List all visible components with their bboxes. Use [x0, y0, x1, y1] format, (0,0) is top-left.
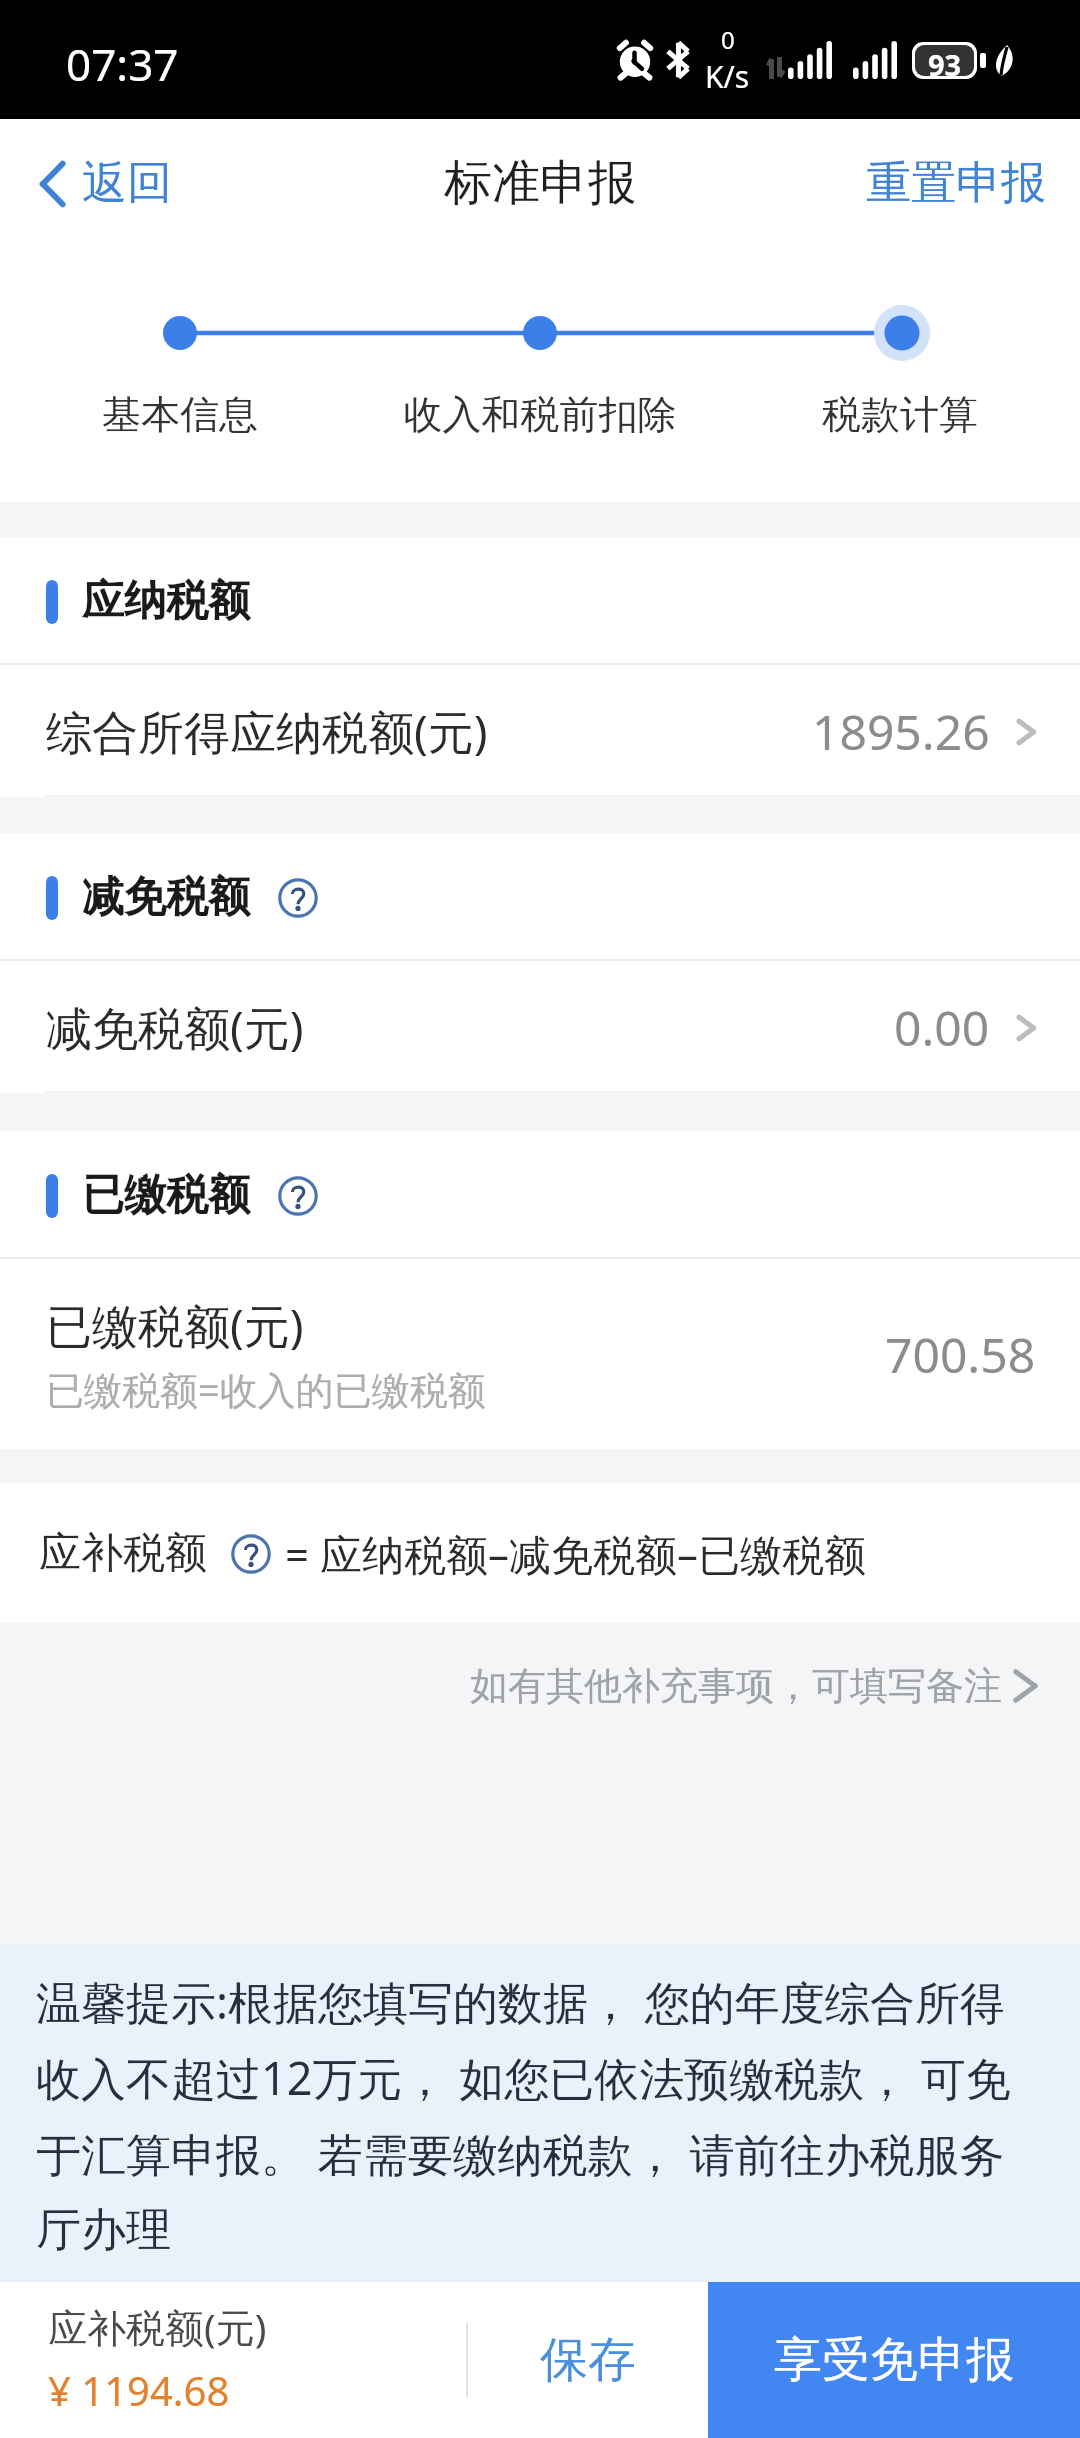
- staticText: 应纳税额: [82, 575, 250, 628]
- button[interactable]: 减免税额(元): [0, 961, 1080, 1093]
- button[interactable]: 已缴税额(元): [0, 1259, 1080, 1449]
- staticText: 保存: [540, 2330, 636, 2390]
- staticText: 07:37: [66, 34, 179, 94]
- staticText: = 应纳税额–减免税额–已缴税额: [285, 1525, 866, 1582]
- staticText: 1895.26: [812, 699, 990, 764]
- button[interactable]: 享受免申报: [708, 2282, 1080, 2438]
- staticText: 已缴税额: [82, 1169, 250, 1222]
- staticText: 减免税额: [82, 871, 250, 924]
- staticText: 0.00: [894, 995, 990, 1060]
- button[interactable]: 重置申报: [846, 155, 1080, 212]
- staticText: 如有其他补充事项，可填写备注: [470, 1662, 1002, 1710]
- staticText: 减免税额(元): [46, 996, 304, 1059]
- staticText: 返回: [82, 155, 172, 212]
- button[interactable]: 返回: [0, 155, 188, 212]
- staticText: 已缴税额=收入的已缴税额: [46, 1363, 486, 1415]
- button[interactable]: 收入和税前扣除: [360, 390, 720, 439]
- button[interactable]: 如有其他补充事项，可填写备注: [450, 1648, 1080, 1724]
- button[interactable]: 帮助说明: [278, 878, 318, 918]
- staticText: 93: [928, 45, 962, 76]
- staticText: 应补税额(元): [48, 2300, 267, 2353]
- staticText: 应补税额: [39, 1527, 207, 1580]
- staticText: K/s: [705, 56, 750, 97]
- button[interactable]: 帮助说明: [231, 1534, 271, 1574]
- staticText: 700.58: [885, 1322, 1036, 1387]
- button[interactable]: 综合所得应纳税额(元): [0, 665, 1080, 797]
- staticText: 享受免申报: [774, 2330, 1014, 2390]
- button[interactable]: 基本信息: [0, 390, 360, 439]
- staticText: ¥ 1194.68: [48, 2363, 230, 2417]
- staticText: 标准申报: [444, 153, 636, 213]
- staticText: 0: [721, 23, 735, 56]
- staticText: 温馨提示:根据您填写的数据， 您的年度综合所得 收入不超过12万元， 如您已依法…: [36, 1971, 1011, 2258]
- button[interactable]: 税款计算: [720, 390, 1080, 439]
- staticText: 综合所得应纳税额(元): [46, 700, 488, 763]
- staticText: 已缴税额(元): [46, 1294, 304, 1357]
- button[interactable]: 帮助说明: [278, 1176, 318, 1216]
- button[interactable]: 保存: [468, 2282, 708, 2438]
